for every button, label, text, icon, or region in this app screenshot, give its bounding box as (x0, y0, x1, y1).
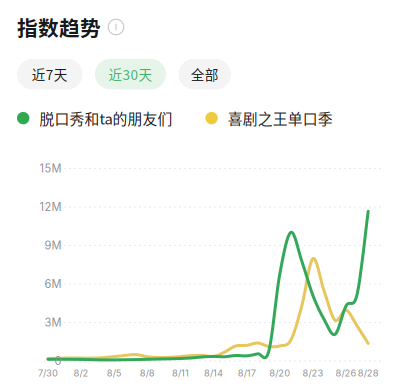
staticText: 15M (39, 162, 61, 175)
staticText: 8/26 (336, 367, 357, 379)
staticText: 全部 (191, 64, 219, 84)
staticText: 8/14 (204, 367, 223, 379)
staticText: 脱口秀和ta的朋友们 (39, 107, 172, 129)
staticText: 8/28 (358, 367, 379, 379)
button[interactable]: 近7天 (17, 59, 82, 89)
staticText: 9M (44, 239, 61, 252)
staticText: 8/23 (302, 367, 323, 379)
staticText: 7/30 (38, 367, 58, 379)
button[interactable]: About index trend (106, 17, 126, 37)
button[interactable]: 近30天 (95, 59, 166, 89)
staticText: 指数趋势 (17, 12, 101, 42)
staticText: 8/20 (269, 367, 290, 379)
staticText: 3M (44, 316, 61, 329)
staticText: 6M (44, 277, 61, 291)
staticText: 8/11 (172, 367, 189, 379)
staticText: 12M (39, 200, 61, 214)
button[interactable]: 全部 (178, 59, 231, 89)
staticText: 喜剧之王单口季 (228, 107, 333, 129)
staticText: 8/5 (107, 367, 122, 379)
staticText: 近7天 (32, 64, 68, 84)
staticText: 近30天 (108, 64, 152, 84)
staticText: 8/17 (238, 367, 256, 379)
staticText: 0 (54, 354, 61, 368)
staticText: 8/8 (140, 367, 155, 379)
staticText: 8/2 (74, 367, 89, 379)
